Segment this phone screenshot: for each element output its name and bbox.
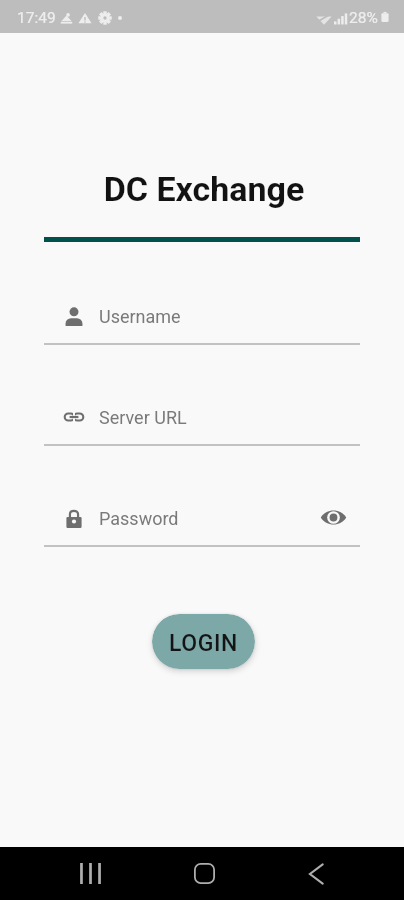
staticText: Username (99, 306, 181, 327)
staticText: Password (99, 508, 179, 529)
staticText: LOGIN (169, 630, 239, 657)
staticText: Server URL (99, 407, 187, 428)
staticText: DC Exchange (2, 169, 404, 209)
button[interactable]: Home (174, 847, 234, 900)
staticText: 28% (349, 9, 378, 27)
staticText: 17:49 (17, 9, 56, 27)
button[interactable]: LOGIN (152, 614, 255, 669)
button[interactable]: Recent apps (60, 847, 120, 900)
button[interactable]: Back (286, 847, 346, 900)
button[interactable]: Show password (317, 501, 349, 533)
